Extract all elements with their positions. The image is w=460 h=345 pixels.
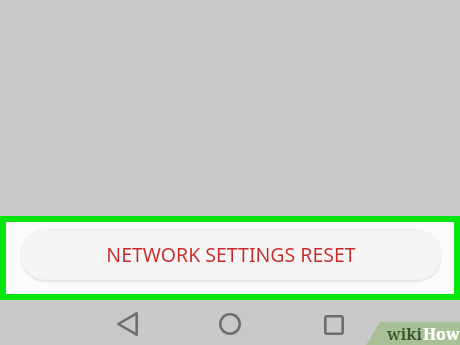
- staticText: wiki: [387, 323, 423, 345]
- button[interactable]: Back: [105, 302, 149, 345]
- staticText: How: [423, 323, 460, 345]
- button[interactable]: NETWORK SETTINGS RESET: [20, 229, 442, 280]
- staticText: NETWORK SETTINGS RESET: [106, 241, 356, 268]
- button[interactable]: Home: [208, 302, 252, 345]
- button[interactable]: Recent apps: [312, 303, 356, 345]
